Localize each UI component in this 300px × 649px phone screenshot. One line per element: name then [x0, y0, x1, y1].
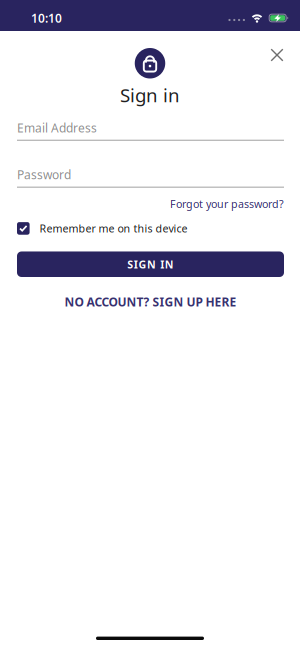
- button[interactable]: Remember me on this device: [17, 221, 188, 235]
- button[interactable]: [268, 46, 286, 64]
- staticText: Remember me on this device: [40, 221, 188, 235]
- staticText: NO ACCOUNT? SIGN UP HERE: [64, 294, 236, 310]
- button[interactable]: Password: [17, 167, 284, 188]
- staticText: 10:10: [31, 10, 62, 26]
- staticText: SIGN IN: [127, 257, 174, 271]
- staticText: Sign in: [120, 82, 180, 107]
- button[interactable]: Forgot your password?: [170, 197, 284, 211]
- staticText: Forgot your password?: [170, 197, 284, 211]
- button[interactable]: SIGN IN: [17, 251, 284, 277]
- staticText: Email Address: [17, 120, 97, 136]
- button[interactable]: Email Address: [17, 120, 284, 141]
- staticText: Password: [17, 167, 71, 183]
- button[interactable]: NO ACCOUNT? SIGN UP HERE: [64, 294, 236, 310]
